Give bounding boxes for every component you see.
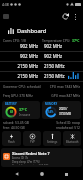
staticText: readahead: 512	[41, 125, 80, 129]
staticText: 902 MHz	[3, 53, 38, 59]
staticText: Access ID: 7b	[12, 156, 28, 160]
button[interactable]: Xiaomi Redmi Note 7	[1, 148, 82, 167]
button[interactable]: Navigation drawer	[3, 14, 9, 19]
staticText: Bluetooth	[66, 140, 79, 144]
staticText: 37°C	[19, 107, 27, 112]
staticText: 54%	[48, 110, 54, 114]
staticText: 902 MHz	[3, 43, 38, 49]
staticText: Sched IO: noop	[41, 120, 80, 124]
staticText: 68	[10, 110, 13, 114]
button[interactable]: Recent apps	[59, 168, 73, 180]
staticText: Dashboard	[17, 27, 47, 35]
staticText: In source	[19, 113, 31, 117]
staticText: 2150 MHz	[3, 63, 38, 69]
button[interactable]: BATTERY	[2, 101, 40, 119]
staticText: Xiaomi Redmi Note 7	[12, 151, 50, 156]
button[interactable]: Flash	[2, 131, 21, 146]
staticText: 902 MHz	[44, 53, 80, 59]
staticText: Cores CPU: 1/8	[3, 38, 37, 42]
staticText: 3730 MB	[59, 112, 71, 116]
staticText: Freq GPU: 370 MHz	[3, 93, 41, 97]
staticText: PVP	[30, 140, 35, 144]
button[interactable]: Settings	[43, 131, 61, 146]
staticText: 2150 MHz	[3, 73, 38, 79]
staticText: free: 44.50 GB	[3, 125, 41, 129]
staticText: MEMORY	[45, 102, 58, 106]
button[interactable]: Back	[10, 168, 24, 180]
staticText: sdcard: 53.45 GB	[3, 120, 41, 124]
staticText: 902 MHz	[44, 43, 80, 49]
staticText: Kernel: Linux version 4.14.186	[12, 164, 49, 165]
button[interactable]: More options	[71, 12, 80, 21]
staticText: CPU max 1843 MHz	[41, 84, 80, 88]
button[interactable]: MEMORY	[42, 101, 81, 119]
staticText: 37°C	[72, 38, 80, 42]
button[interactable]: Bluetooth	[63, 131, 81, 146]
staticText: 2150 MHz	[44, 73, 80, 79]
staticText: GPU max 847 MHz	[41, 93, 80, 97]
staticText: Flash	[8, 140, 15, 144]
staticText: BATTERY	[5, 102, 17, 106]
staticText: Settings	[47, 140, 58, 144]
staticText: Temperature CPU:	[42, 38, 72, 42]
staticText: Deep sleep: 47m (77%)	[12, 160, 40, 164]
staticText: 2020 /	[59, 107, 68, 111]
staticText: 2150 MHz	[44, 63, 80, 69]
staticText: 4:38	[2, 2, 9, 7]
button[interactable]: PVP	[23, 131, 41, 146]
button[interactable]: Home	[35, 168, 49, 180]
staticText: Governor CPU: schedutil	[3, 84, 41, 88]
button[interactable]: Refresh	[60, 11, 70, 21]
